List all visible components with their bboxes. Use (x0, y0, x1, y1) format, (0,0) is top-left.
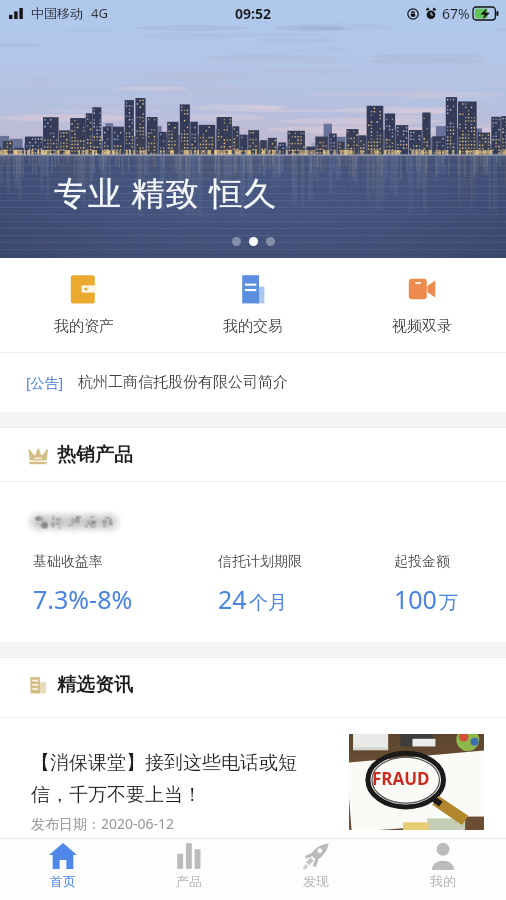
staticText: 4G (91, 4, 108, 22)
button[interactable]: 精选资讯 (0, 658, 506, 717)
button[interactable]: 基础收益率 (0, 482, 506, 642)
staticText: 我的交易 (223, 317, 283, 336)
staticText: FRAUD (372, 767, 430, 790)
button[interactable]: 我的 (379, 839, 506, 900)
button[interactable]: 产品 (126, 839, 252, 900)
button[interactable]: 视频双录 (337, 258, 506, 352)
staticText: 专业 精致 恒久 (54, 170, 278, 215)
staticText: 万 (439, 591, 458, 615)
staticText: 100 (394, 582, 437, 616)
staticText: 基础收益率 (33, 553, 103, 571)
staticText: 产品 (176, 873, 202, 889)
button[interactable]: 【消保课堂】接到这些电话或短 (0, 718, 506, 833)
staticText: 个月 (249, 591, 287, 615)
button[interactable]: 我的资产 (0, 258, 168, 352)
staticText: 我的 (430, 873, 456, 889)
staticText: 7.3%-8% (33, 582, 133, 616)
staticText: 信，千万不要上当！ (31, 783, 202, 807)
staticText: 热销产品 (57, 443, 133, 467)
staticText: 中国移动 (31, 5, 83, 21)
staticText: 发布日期：2020-06-12 (31, 814, 175, 833)
staticText: [公告] (26, 373, 64, 392)
staticText: 67% (442, 4, 470, 23)
staticText: 杭州工商信托股份有限公司简介 (78, 373, 288, 392)
staticText: 发现 (303, 873, 329, 889)
staticText: 09:52 (235, 4, 271, 23)
staticText: 视频双录 (392, 317, 452, 336)
button[interactable]: 我的交易 (168, 258, 337, 352)
staticText: 我的资产 (54, 317, 114, 336)
button[interactable]: 热销产品 (0, 428, 506, 481)
button[interactable]: 发现 (252, 839, 379, 900)
staticText: 起投金额 (394, 553, 450, 571)
staticText: 精选资讯 (57, 673, 133, 697)
staticText: 【消保课堂】接到这些电话或短 (31, 751, 297, 775)
staticText: 首页 (50, 873, 76, 889)
staticText: 24 (218, 582, 247, 616)
button[interactable]: 首页 (0, 839, 126, 900)
staticText: 信托计划期限 (218, 553, 302, 571)
button[interactable]: [公告] (0, 353, 506, 412)
